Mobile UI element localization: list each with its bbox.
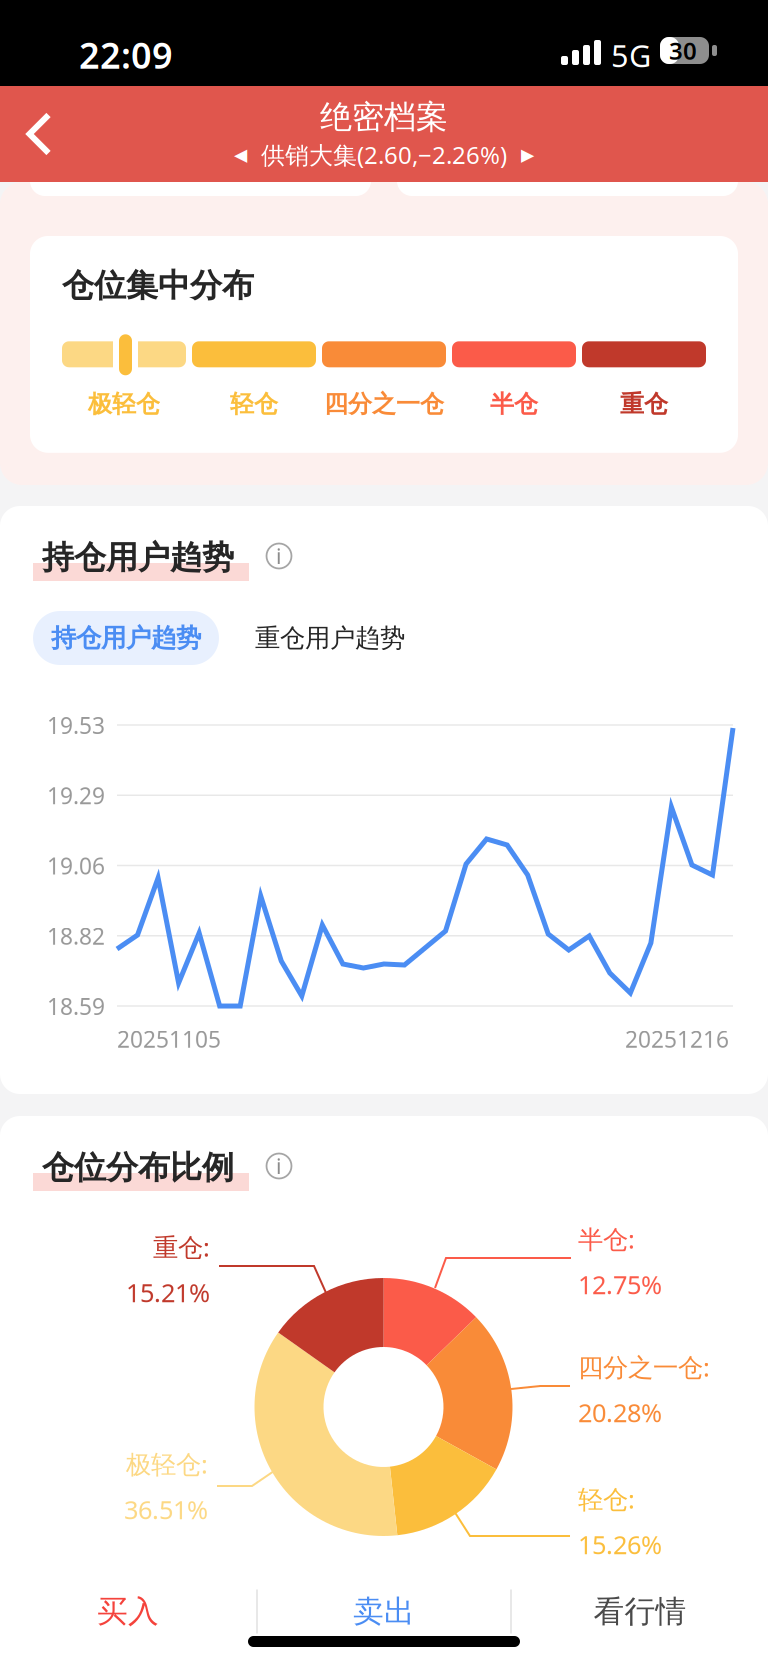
staticText: 极轻仓 — [88, 389, 160, 419]
staticText: 20.28% — [578, 1396, 662, 1429]
staticText: 轻仓 — [230, 389, 278, 419]
staticText: 卖出 — [353, 1593, 415, 1630]
button[interactable]: 看行情 — [512, 1560, 768, 1663]
staticText: 18.82 — [47, 921, 105, 951]
staticText: 19.53 — [47, 710, 105, 740]
staticText: 看行情 — [593, 1593, 686, 1630]
staticText: 半仓 — [490, 389, 538, 419]
staticText: 半仓: — [578, 1222, 635, 1256]
staticText: 15.26% — [578, 1528, 662, 1561]
staticText: 持仓用户趋势 — [42, 538, 234, 577]
staticText: ◀ — [234, 145, 247, 164]
staticText: 供销大集(2.60,−2.26%) — [261, 139, 507, 171]
staticText: 轻仓: — [578, 1482, 635, 1516]
staticText: 重仓用户趋势 — [255, 622, 405, 653]
staticText: ▶ — [521, 145, 534, 164]
staticText: 19.29 — [47, 780, 105, 810]
button[interactable]: Back — [0, 86, 78, 182]
staticText: 重仓: — [153, 1230, 210, 1264]
staticText: 持仓用户趋势 — [51, 622, 201, 653]
staticText: 极轻仓: — [126, 1447, 208, 1481]
staticText: 30 — [669, 35, 697, 66]
staticText: 20251105 — [117, 1024, 221, 1054]
staticText: 12.75% — [578, 1268, 662, 1301]
staticText: 绝密档案 — [320, 97, 448, 137]
staticText: 22:09 — [79, 31, 173, 79]
staticText: 四分之一仓 — [324, 389, 444, 419]
staticText: 18.59 — [47, 991, 105, 1021]
button[interactable]: 买入 — [0, 1560, 256, 1663]
button[interactable]: 持仓用户趋势 — [33, 611, 219, 665]
button[interactable]: 卖出 — [256, 1560, 512, 1663]
staticText: 买入 — [97, 1593, 159, 1630]
button[interactable]: 重仓用户趋势 — [255, 611, 405, 665]
staticText: 36.51% — [124, 1493, 208, 1526]
staticText: 19.06 — [47, 851, 105, 881]
staticText: 仓位分布比例 — [42, 1148, 234, 1187]
staticText: 重仓 — [620, 389, 668, 419]
staticText: 15.21% — [126, 1276, 210, 1309]
staticText: 仓位集中分布 — [62, 266, 254, 305]
staticText: 5G — [611, 35, 651, 76]
staticText: 四分之一仓: — [578, 1350, 710, 1384]
staticText: i — [276, 1152, 282, 1180]
staticText: i — [276, 542, 282, 570]
staticText: 20251216 — [625, 1024, 729, 1054]
